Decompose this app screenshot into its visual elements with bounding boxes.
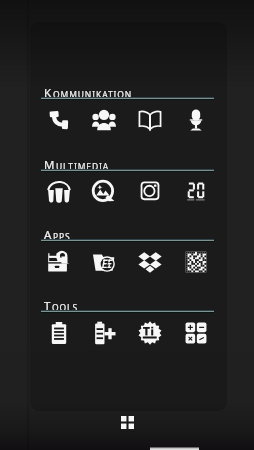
button[interactable]: Instagram bbox=[133, 175, 167, 209]
staticText: K bbox=[44, 85, 53, 101]
button[interactable]: Phone bbox=[42, 103, 76, 137]
button[interactable]: Music bbox=[42, 175, 76, 209]
staticText: A bbox=[44, 227, 53, 243]
button[interactable]: T bbox=[44, 298, 78, 314]
button[interactable]: Gallery bbox=[87, 175, 121, 209]
button[interactable]: Battery saver bbox=[87, 316, 121, 350]
staticText: OMMUNIKATION bbox=[53, 89, 133, 101]
button[interactable]: Calculator bbox=[179, 316, 213, 350]
button[interactable]: M bbox=[44, 157, 110, 173]
button[interactable]: ES File Explorer bbox=[87, 245, 121, 279]
button[interactable]: File manager bbox=[42, 245, 76, 279]
staticText: ULTIMEDIA bbox=[56, 161, 110, 173]
button[interactable]: Contacts bbox=[87, 103, 121, 137]
button[interactable]: A bbox=[44, 227, 71, 243]
staticText: PPS bbox=[53, 231, 71, 243]
button[interactable]: K bbox=[44, 85, 133, 101]
staticText: M bbox=[44, 157, 56, 173]
button[interactable]: Dropbox bbox=[133, 245, 167, 279]
button[interactable]: Clock bbox=[179, 175, 213, 209]
staticText: OOLS bbox=[52, 302, 78, 314]
button[interactable]: Recorder bbox=[179, 103, 213, 137]
button[interactable]: Titanium Backup bbox=[133, 316, 167, 350]
button[interactable]: App drawer bbox=[112, 407, 142, 437]
staticText: T bbox=[44, 298, 52, 314]
button[interactable]: QR scanner bbox=[179, 245, 213, 279]
button[interactable]: Messages bbox=[133, 103, 167, 137]
button[interactable]: Battery bbox=[42, 316, 76, 350]
